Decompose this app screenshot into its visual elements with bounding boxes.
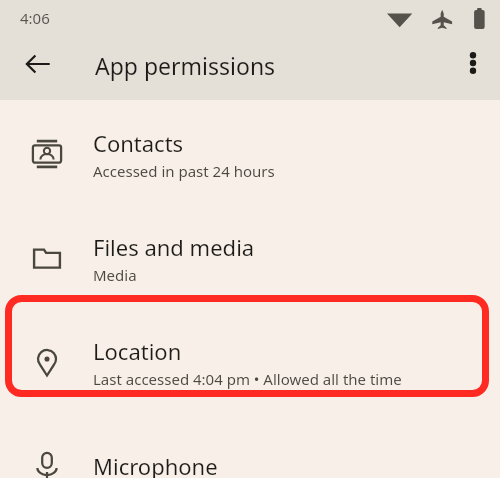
staticText: 4:06 [20, 8, 50, 28]
button[interactable]: Files and media [0, 209, 500, 307]
button[interactable]: Contacts [0, 105, 500, 203]
button[interactable]: Location [0, 313, 500, 411]
staticText: Contacts [93, 128, 184, 158]
staticText: Media [93, 265, 137, 285]
button[interactable]: Microphone [0, 417, 500, 478]
staticText: Files and media [93, 232, 255, 262]
staticText: Microphone [93, 451, 218, 478]
button[interactable]: Back [14, 40, 62, 88]
button[interactable]: More options [450, 40, 496, 86]
staticText: Location [93, 336, 182, 366]
staticText: Accessed in past 24 hours [93, 161, 275, 181]
staticText: App permissions [95, 50, 276, 81]
staticText: Last accessed 4:04 pm • Allowed all the … [93, 369, 402, 389]
